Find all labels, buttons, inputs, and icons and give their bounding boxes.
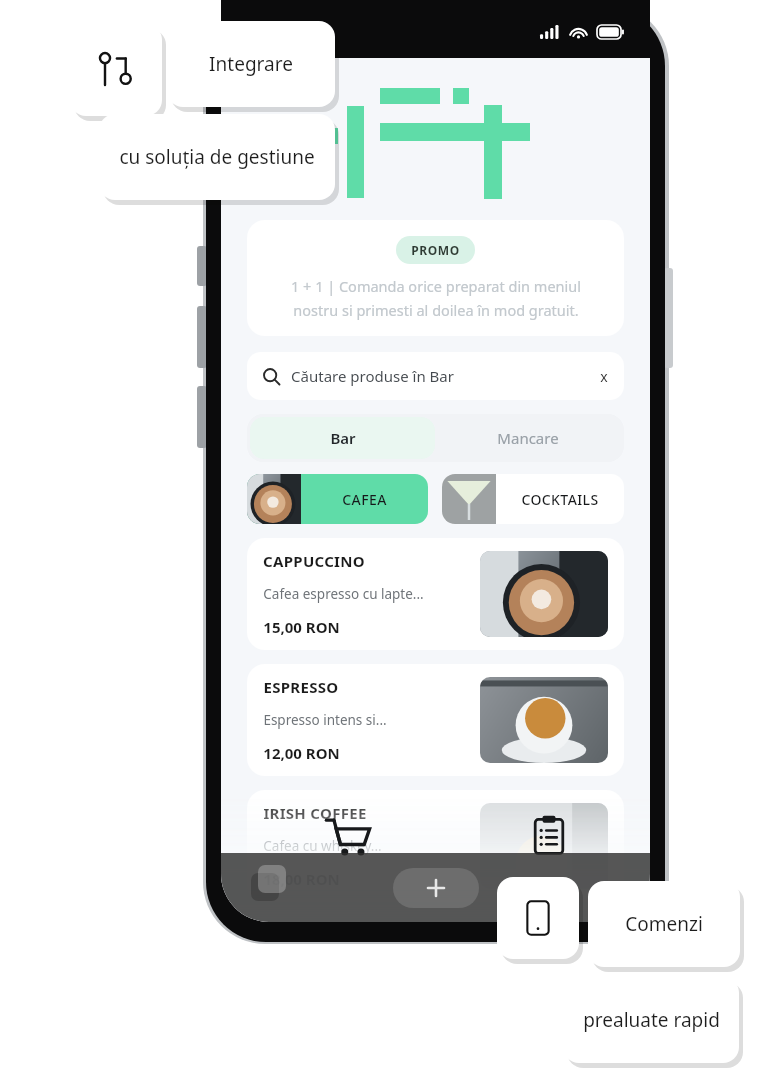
button[interactable]: Comenzi bbox=[588, 881, 740, 967]
staticText: Cafea espresso cu lapte... bbox=[263, 585, 424, 603]
staticText: ESPRESSO bbox=[263, 677, 339, 697]
button[interactable]: CAPPUCCINO bbox=[247, 538, 624, 650]
staticText: x bbox=[600, 367, 608, 386]
button[interactable] bbox=[497, 877, 579, 959]
button[interactable]: CAFEA bbox=[247, 474, 428, 524]
button[interactable]: Recents bbox=[251, 865, 295, 909]
staticText: IRISH COFFEE bbox=[263, 803, 367, 823]
button[interactable]: PROMO bbox=[247, 220, 624, 336]
staticText: Căutare produse în Bar bbox=[291, 366, 454, 386]
button[interactable]: Mancare bbox=[435, 417, 621, 459]
staticText: Comenzi bbox=[625, 911, 703, 937]
staticText: 12,00 RON bbox=[263, 743, 340, 763]
staticText: COCKTAILS bbox=[521, 490, 599, 509]
staticText: CAPPUCCINO bbox=[263, 551, 365, 571]
button[interactable]: Add bbox=[393, 868, 479, 908]
staticText: cu soluția de gestiune bbox=[119, 144, 315, 170]
staticText: Mancare bbox=[497, 428, 559, 448]
button[interactable]: ESPRESSO bbox=[247, 664, 624, 776]
button[interactable]: IRISH COFFEE bbox=[247, 790, 624, 902]
button[interactable]: prealuate rapid bbox=[563, 977, 739, 1063]
staticText: prealuate rapid bbox=[583, 1007, 720, 1033]
button[interactable]: COCKTAILS bbox=[442, 474, 624, 524]
button[interactable] bbox=[70, 24, 162, 116]
staticText: Espresso intens si... bbox=[263, 711, 387, 729]
staticText: Bar bbox=[330, 428, 356, 448]
staticText: 15,00 RON bbox=[263, 617, 340, 637]
staticText: CAFEA bbox=[342, 490, 387, 509]
button[interactable]: Bar bbox=[250, 417, 435, 459]
staticText: Cafea cu whiskey... bbox=[263, 837, 382, 855]
button[interactable]: Orders bbox=[526, 813, 572, 859]
button[interactable]: Căutare produse în Bar bbox=[247, 352, 624, 400]
staticText: 18,00 RON bbox=[263, 869, 340, 889]
button[interactable]: cu soluția de gestiune bbox=[99, 114, 335, 200]
button[interactable]: Cart bbox=[321, 811, 375, 865]
button[interactable]: Integrare bbox=[167, 21, 335, 107]
staticText: PROMO bbox=[411, 242, 460, 258]
staticText: 1 + 1 | Comanda orice preparat din meniu… bbox=[291, 276, 581, 320]
staticText: Integrare bbox=[209, 51, 293, 77]
